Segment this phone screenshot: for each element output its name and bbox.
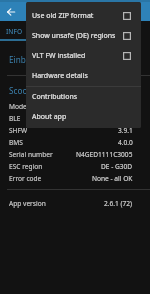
- button[interactable]: Model: [0, 100, 150, 112]
- staticText: ESC region: [9, 162, 43, 171]
- staticText: About app: [32, 112, 67, 122]
- staticText: Error code: [9, 174, 42, 183]
- button[interactable]: Serial number: [0, 148, 150, 160]
- button[interactable]: Use old ZIP format: [26, 6, 141, 26]
- staticText: BMS: [9, 138, 23, 147]
- staticText: SHFW: [9, 126, 28, 135]
- button[interactable]: Show unsafe (DE) regions: [26, 26, 141, 46]
- button[interactable]: VLT FW installed: [26, 46, 141, 66]
- staticText: 3.9.1: [118, 126, 133, 135]
- staticText: None - all OK: [92, 174, 133, 183]
- staticText: App version: [9, 199, 46, 208]
- button[interactable]: INFO: [0, 21, 28, 41]
- staticText: INFO: [6, 27, 23, 36]
- button[interactable]: Contributions: [26, 87, 141, 107]
- staticText: Contributions: [32, 92, 78, 102]
- staticText: BLE: [9, 114, 21, 123]
- button[interactable]: BMS: [0, 136, 150, 148]
- staticText: Use old ZIP format: [32, 11, 94, 21]
- staticText: VLT FW installed: [32, 51, 86, 61]
- button[interactable]: ESC region: [0, 160, 150, 172]
- button[interactable]: Back: [3, 4, 19, 20]
- staticText: DE - G30D: [101, 162, 133, 171]
- staticText: Scooter: [9, 85, 39, 96]
- staticText: Model: [9, 102, 29, 111]
- staticText: Serial number: [9, 150, 53, 159]
- staticText: Einbauort: [9, 54, 47, 65]
- staticText: 4.0.0: [118, 138, 133, 147]
- button[interactable]: SHFW: [0, 124, 150, 136]
- staticText: N4GED1111C3005: [76, 150, 133, 159]
- staticText: Hardware details: [32, 71, 88, 81]
- button[interactable]: BLE: [0, 112, 150, 124]
- button[interactable]: About app: [26, 107, 141, 127]
- button[interactable]: Error code: [0, 172, 150, 184]
- button[interactable]: Hardware details: [26, 66, 141, 86]
- button[interactable]: App version: [0, 197, 150, 209]
- staticText: Show unsafe (DE) regions: [32, 31, 116, 41]
- staticText: 2.6.1 (72): [104, 199, 133, 208]
